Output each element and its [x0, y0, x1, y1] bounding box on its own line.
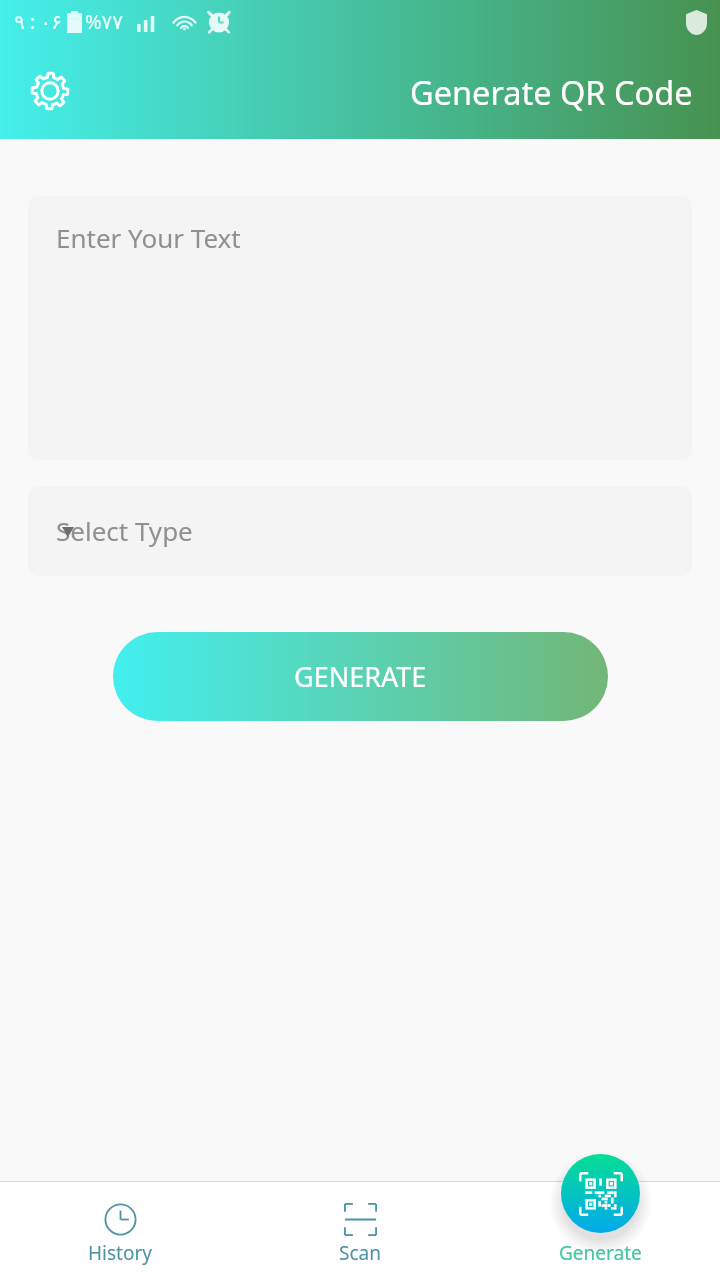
button[interactable]: History	[0, 1182, 240, 1266]
button[interactable]: Generate QR code	[561, 1154, 640, 1233]
staticText: %۷۷	[85, 8, 124, 35]
staticText: Enter Your Text	[56, 220, 241, 255]
staticText: Select Type	[56, 513, 193, 548]
staticText: Generate QR Code	[410, 70, 693, 114]
staticText: History	[88, 1240, 152, 1266]
staticText: Scan	[339, 1240, 381, 1266]
button[interactable]: GENERATE	[113, 632, 608, 721]
button[interactable]: Scan	[240, 1182, 480, 1266]
staticText: ۹ : ۰۶	[14, 8, 62, 35]
button[interactable]: Settings	[22, 63, 78, 119]
button[interactable]: Generate	[480, 1182, 720, 1266]
staticText: Generate	[559, 1240, 642, 1266]
button[interactable]: Select Type	[28, 486, 692, 576]
button[interactable]: Enter Your Text	[28, 196, 692, 460]
staticText: GENERATE	[294, 658, 427, 695]
